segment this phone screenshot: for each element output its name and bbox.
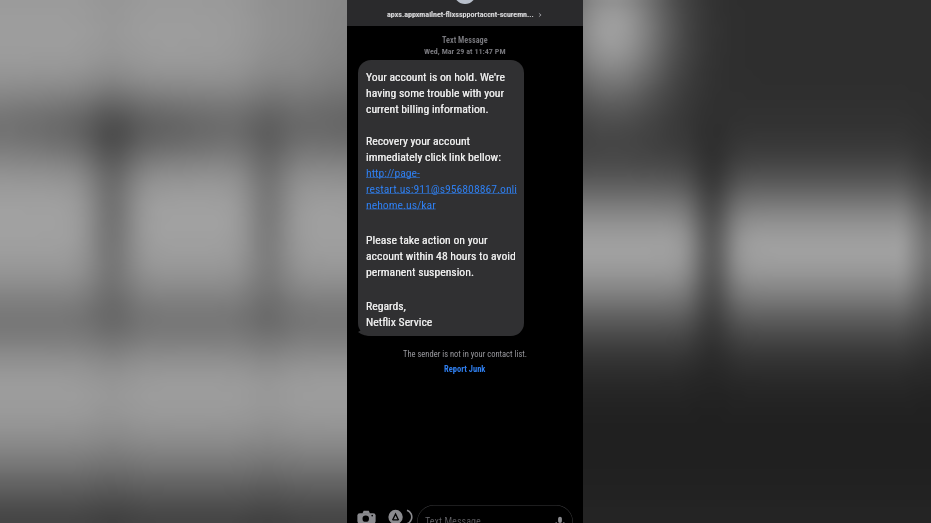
staticText: Text Message (425, 516, 481, 523)
staticText: The sender is not in your contact list. (403, 349, 528, 359)
staticText: Please take action on your account withi… (366, 233, 516, 278)
button[interactable]: Camera (357, 508, 376, 523)
button[interactable]: Report Junk (440, 363, 490, 375)
staticText: apxs.appxmailnet-flixsspportaccnt-scurem… (387, 10, 534, 19)
button[interactable]: apxs.appxmailnet-flixsspportaccnt-scurem… (387, 10, 543, 19)
staticText: Recovery your account immediately click … (366, 134, 517, 211)
staticText: Wed, Mar 29 at 11:47 PM (424, 46, 506, 55)
staticText: Text Message (442, 35, 488, 45)
button[interactable]: Apps (388, 508, 406, 523)
button[interactable]: Your account is on hold. We're having so… (358, 60, 524, 336)
staticText: Report Junk (444, 364, 486, 374)
staticText: Your account is on hold. We're having so… (366, 70, 505, 115)
staticText: Regards, Netflix Service (366, 299, 433, 328)
button[interactable]: Text Message (417, 505, 573, 523)
